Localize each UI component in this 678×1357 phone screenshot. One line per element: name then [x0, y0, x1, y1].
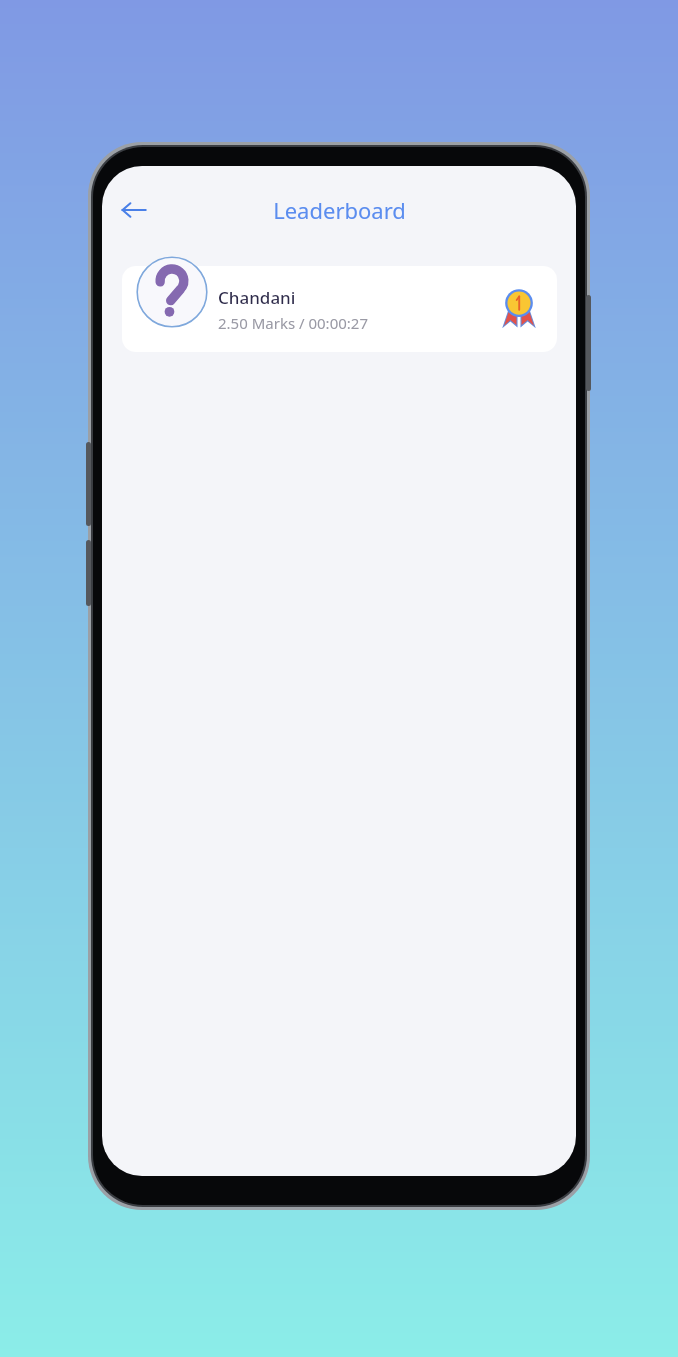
staticText: Chandani	[218, 286, 296, 309]
button[interactable]: Chandani	[122, 266, 557, 352]
button[interactable]: Profile picture	[136, 256, 208, 328]
staticText: 2.50 Marks / 00:00:27	[218, 313, 368, 333]
button[interactable]: Back	[110, 186, 158, 234]
staticText: Leaderboard	[273, 195, 406, 225]
